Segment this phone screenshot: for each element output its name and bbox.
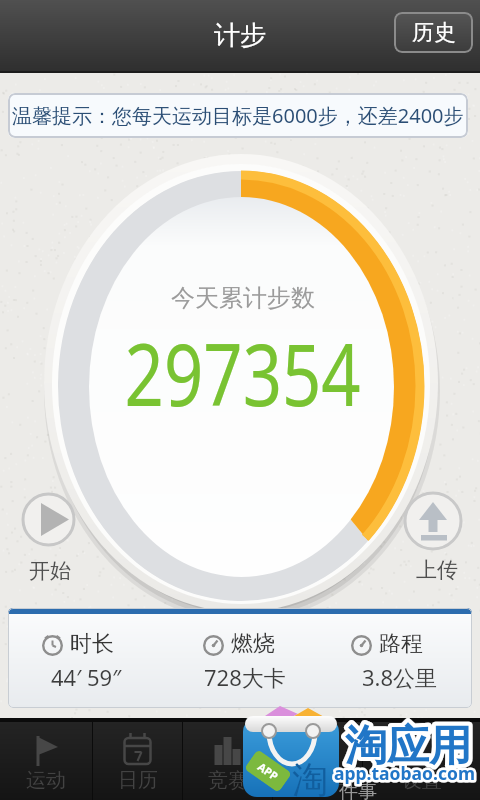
button[interactable]: 上传 <box>402 488 466 586</box>
staticText: 历史 <box>412 19 456 47</box>
button[interactable]: 运动 <box>0 722 92 800</box>
staticText: 路程 <box>379 630 423 658</box>
staticText: 开始 <box>29 558 71 584</box>
staticText: app.taobao.com <box>334 761 475 785</box>
staticText: 温馨提示：您每天运动目标是6000步，还差2400步 <box>12 102 464 129</box>
button[interactable]: 历史 <box>394 12 473 53</box>
staticText: 燃烧 <box>231 630 275 658</box>
staticText: 件事 <box>339 780 377 800</box>
staticText: 淘 <box>292 757 328 800</box>
staticText: APP <box>255 759 282 784</box>
staticText: 三件事 <box>288 768 348 793</box>
staticText: 297354 <box>125 314 361 431</box>
staticText: app.taobao.com <box>334 761 475 785</box>
button[interactable]: 竞赛 <box>183 722 272 800</box>
staticText: 运动 <box>26 768 66 793</box>
button[interactable]: 三件事 <box>273 722 362 800</box>
staticText: 上传 <box>416 557 458 583</box>
staticText: 时长 <box>70 630 114 658</box>
staticText: 728大卡 <box>204 662 286 692</box>
staticText: 3.8公里 <box>362 662 438 692</box>
staticText: 竞赛 <box>208 768 248 793</box>
staticText: 设置 <box>402 768 442 793</box>
button[interactable]: 开始 <box>18 488 82 586</box>
button[interactable]: APP <box>242 702 480 800</box>
staticText: 淘应用 <box>345 720 471 773</box>
staticText: 44′ 59″ <box>51 662 122 692</box>
staticText: 淘应用 <box>345 720 471 773</box>
staticText: 日历 <box>118 768 158 793</box>
staticText: 今天累计步数 <box>171 283 315 313</box>
staticText: 计步 <box>214 19 266 52</box>
button[interactable]: 设置 <box>363 722 480 800</box>
button[interactable]: 日历 <box>93 722 182 800</box>
